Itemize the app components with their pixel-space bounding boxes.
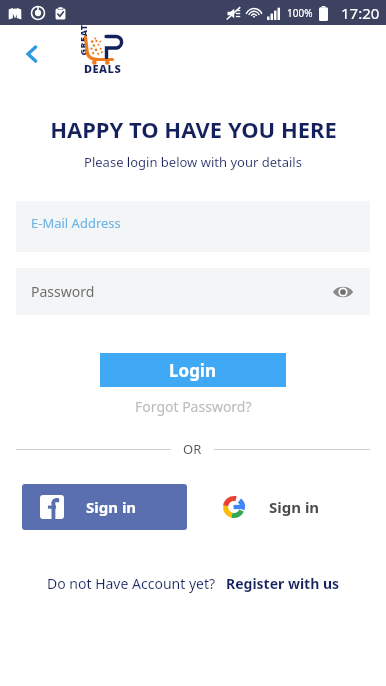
staticText: Login [169,359,217,382]
staticText: Password [31,282,95,301]
button[interactable]: Sign in [22,484,187,530]
button[interactable]: Show password [326,275,360,309]
button[interactable]: Login [100,353,286,387]
button[interactable]: Forgot Password? [125,395,262,418]
staticText: 100% [287,6,313,20]
button[interactable]: Sign in [207,484,364,530]
staticText: HAPPY TO HAVE YOU HERE [50,114,337,144]
button[interactable]: Back [12,34,52,74]
staticText: GREAT [76,24,88,55]
staticText: DEALS [84,61,122,76]
staticText: 17:20 [341,3,380,23]
button[interactable]: Password [16,268,370,315]
staticText: Sign in [269,497,320,517]
staticText: Please login below with your details [84,153,302,171]
staticText: OR [183,440,202,458]
staticText: Forgot Password? [135,397,252,416]
button[interactable]: E-Mail Address [16,201,370,252]
staticText: Sign in [86,497,137,517]
staticText: Do not Have Account yet? [47,574,216,593]
button[interactable]: Register with us [226,572,340,595]
staticText: E-Mail Address [31,214,121,232]
staticText: Register with us [226,574,340,593]
